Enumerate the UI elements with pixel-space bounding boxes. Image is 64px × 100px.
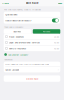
staticText: Save	[58, 1, 62, 5]
button[interactable]: +	[1, 51, 62, 56]
button[interactable]: Delete Rule	[1, 72, 62, 82]
staticText: $0.00	[54, 41, 59, 44]
staticText: Personal	[43, 30, 51, 33]
staticText: Delete Rule	[26, 77, 38, 80]
staticText: >	[58, 68, 59, 71]
staticText: Cancel	[2, 1, 9, 5]
staticText: Then add a category	[4, 26, 23, 28]
staticText: For the rule name, type it in below	[4, 8, 41, 11]
staticText: Edit Rule	[26, 1, 38, 5]
button[interactable]: Travel expenses	[4, 34, 60, 39]
staticText: Vehicle insurance	[9, 47, 26, 50]
button[interactable]: Select account	[4, 67, 60, 72]
staticText: $0.00	[54, 35, 59, 38]
staticText: Legal and professional services	[9, 41, 40, 44]
button[interactable]: Cancel	[1, 0, 11, 6]
button[interactable]: Legal and professional services	[4, 40, 60, 45]
staticText: Match description exactly	[5, 19, 31, 22]
staticText: $0.00	[54, 47, 59, 50]
button[interactable]: Save	[56, 0, 63, 6]
staticText: QuickBooks	[5, 13, 17, 16]
button[interactable]: Personal	[33, 29, 60, 34]
staticText: Select account	[5, 68, 19, 71]
staticText: Add another category	[8, 53, 28, 56]
staticText: Only applies this rule to transactions t…	[5, 63, 49, 66]
staticText: Advanced	[4, 58, 12, 61]
button[interactable]: Vehicle insurance	[4, 46, 60, 51]
staticText: +	[5, 53, 6, 56]
staticText: Business	[13, 30, 21, 33]
button[interactable]: Business	[4, 29, 31, 34]
staticText: Travel expenses	[9, 35, 24, 38]
